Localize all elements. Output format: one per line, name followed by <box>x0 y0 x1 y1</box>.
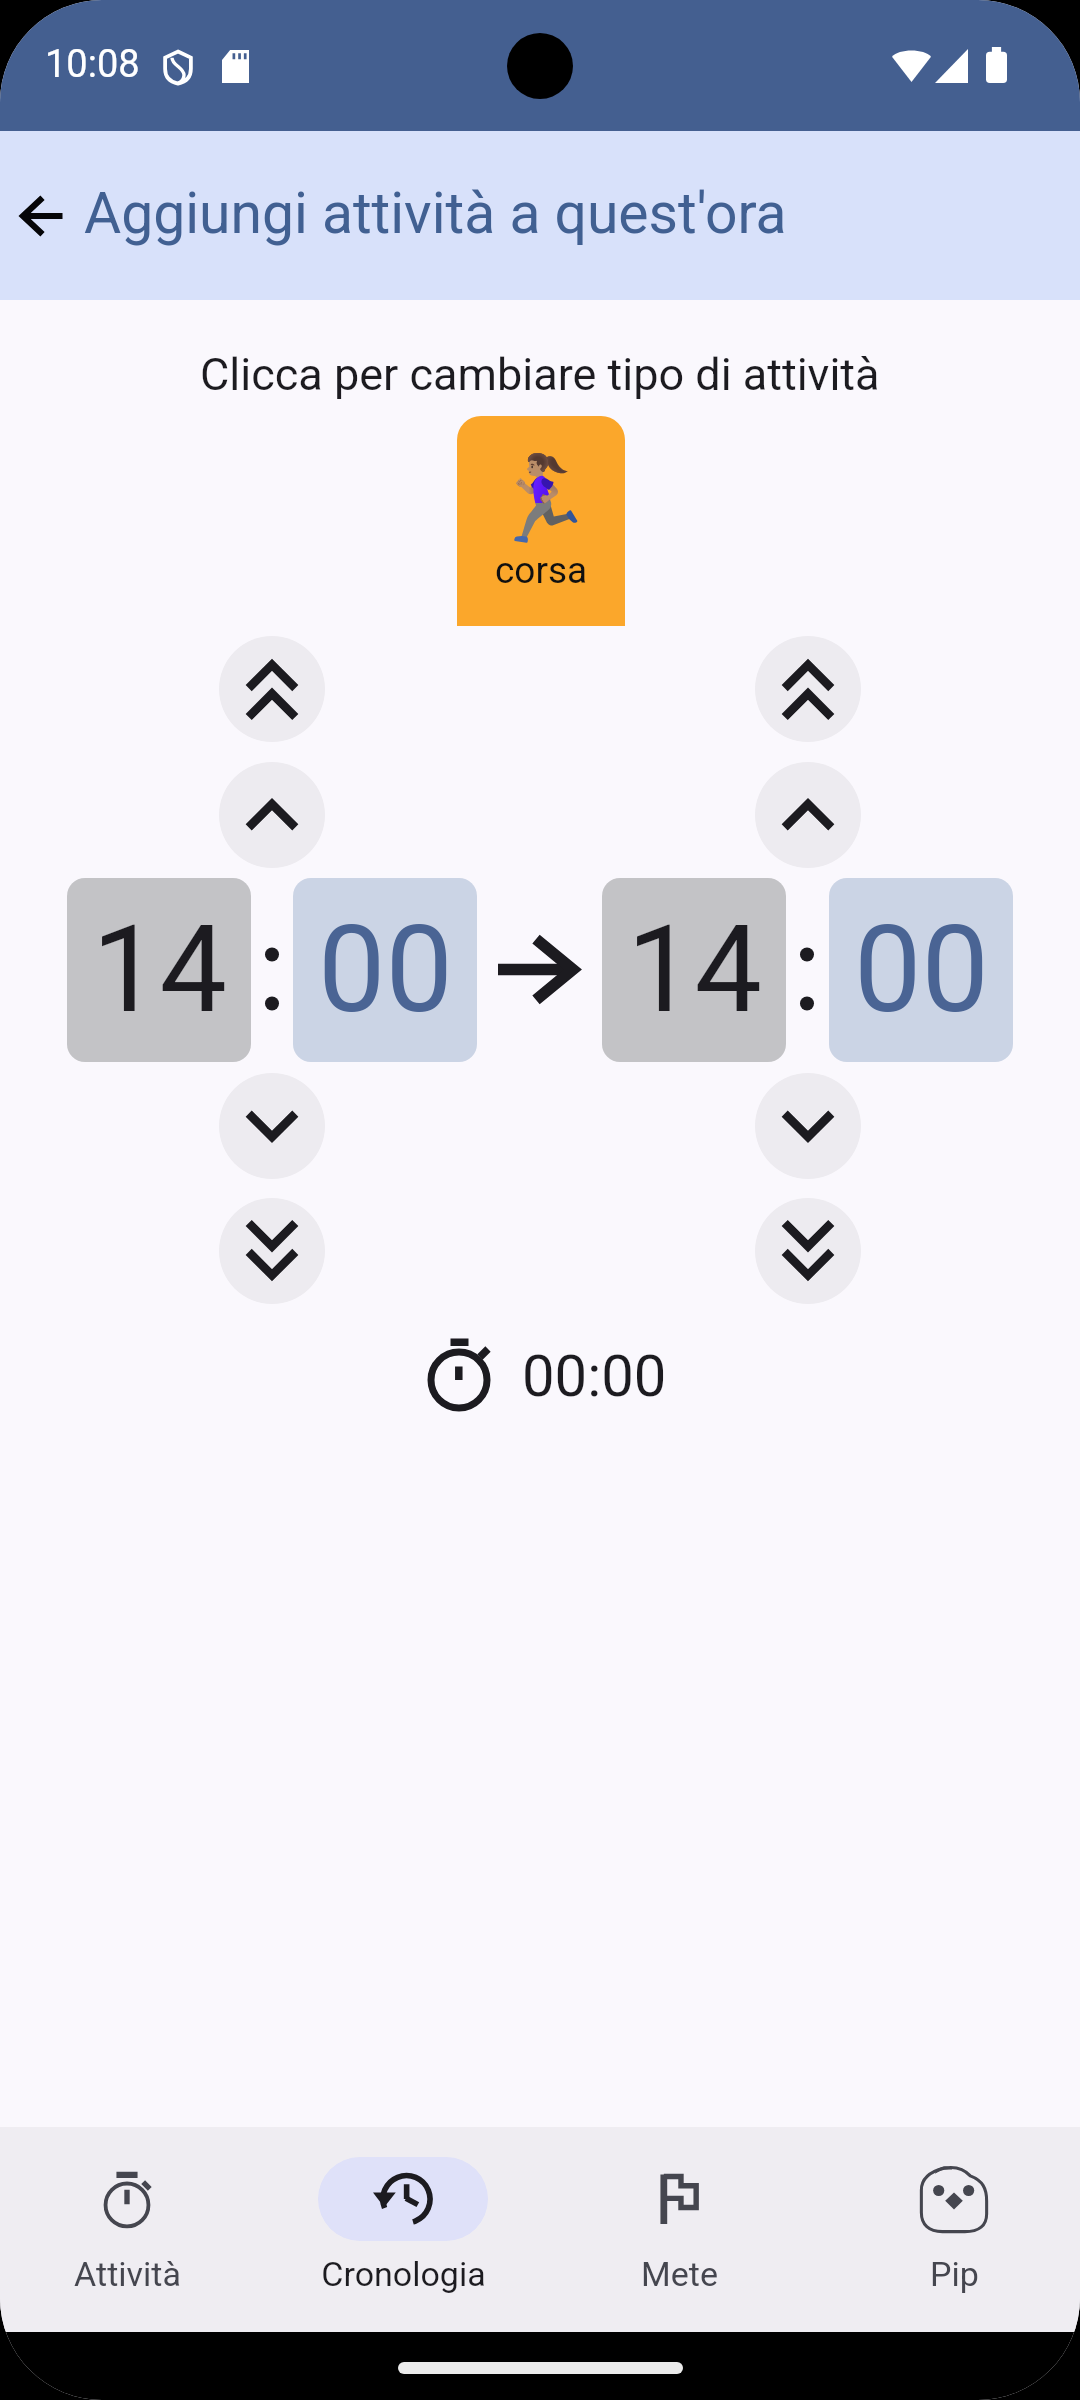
button[interactable]: Aumenta <box>755 636 861 742</box>
staticText: Mete <box>641 2254 718 2294</box>
button[interactable]: Diminuisci <box>755 1198 861 1304</box>
staticText: 🏃🏽‍♀️ <box>489 450 594 548</box>
staticText: Clicca per cambiare tipo di attività <box>200 348 880 401</box>
staticText: corsa <box>495 549 588 592</box>
button[interactable]: 00 <box>293 878 477 1062</box>
button[interactable]: 14 <box>67 878 251 1062</box>
button[interactable]: Indietro <box>0 168 90 264</box>
staticText: 14 <box>627 900 762 1041</box>
button[interactable]: Aumenta <box>755 762 861 868</box>
button[interactable]: Diminuisci <box>219 1198 325 1304</box>
button[interactable]: Cronologia <box>268 2127 538 2294</box>
button[interactable]: Attività <box>0 2127 262 2294</box>
staticText: Pip <box>930 2254 979 2294</box>
button[interactable]: 14 <box>602 878 786 1062</box>
button[interactable]: Aumenta <box>219 636 325 742</box>
staticText: 14 <box>92 900 227 1041</box>
staticText: Aggiungi attività a quest'ora <box>84 180 787 247</box>
staticText: Cronologia <box>321 2254 486 2294</box>
button[interactable]: Diminuisci <box>755 1073 861 1179</box>
staticText: 00 <box>318 900 453 1041</box>
staticText: 00 <box>854 900 989 1041</box>
staticText: 00:00 <box>522 1342 667 1410</box>
button[interactable]: 00 <box>829 878 1013 1062</box>
button[interactable]: Diminuisci <box>219 1073 325 1179</box>
button[interactable]: Pip <box>819 2127 1080 2294</box>
button[interactable]: Mete <box>544 2127 814 2294</box>
button[interactable]: 🏃🏽‍♀️ <box>457 416 625 626</box>
staticText: 10:08 <box>45 42 140 87</box>
button[interactable]: Aumenta <box>219 762 325 868</box>
staticText: Attività <box>74 2254 181 2294</box>
